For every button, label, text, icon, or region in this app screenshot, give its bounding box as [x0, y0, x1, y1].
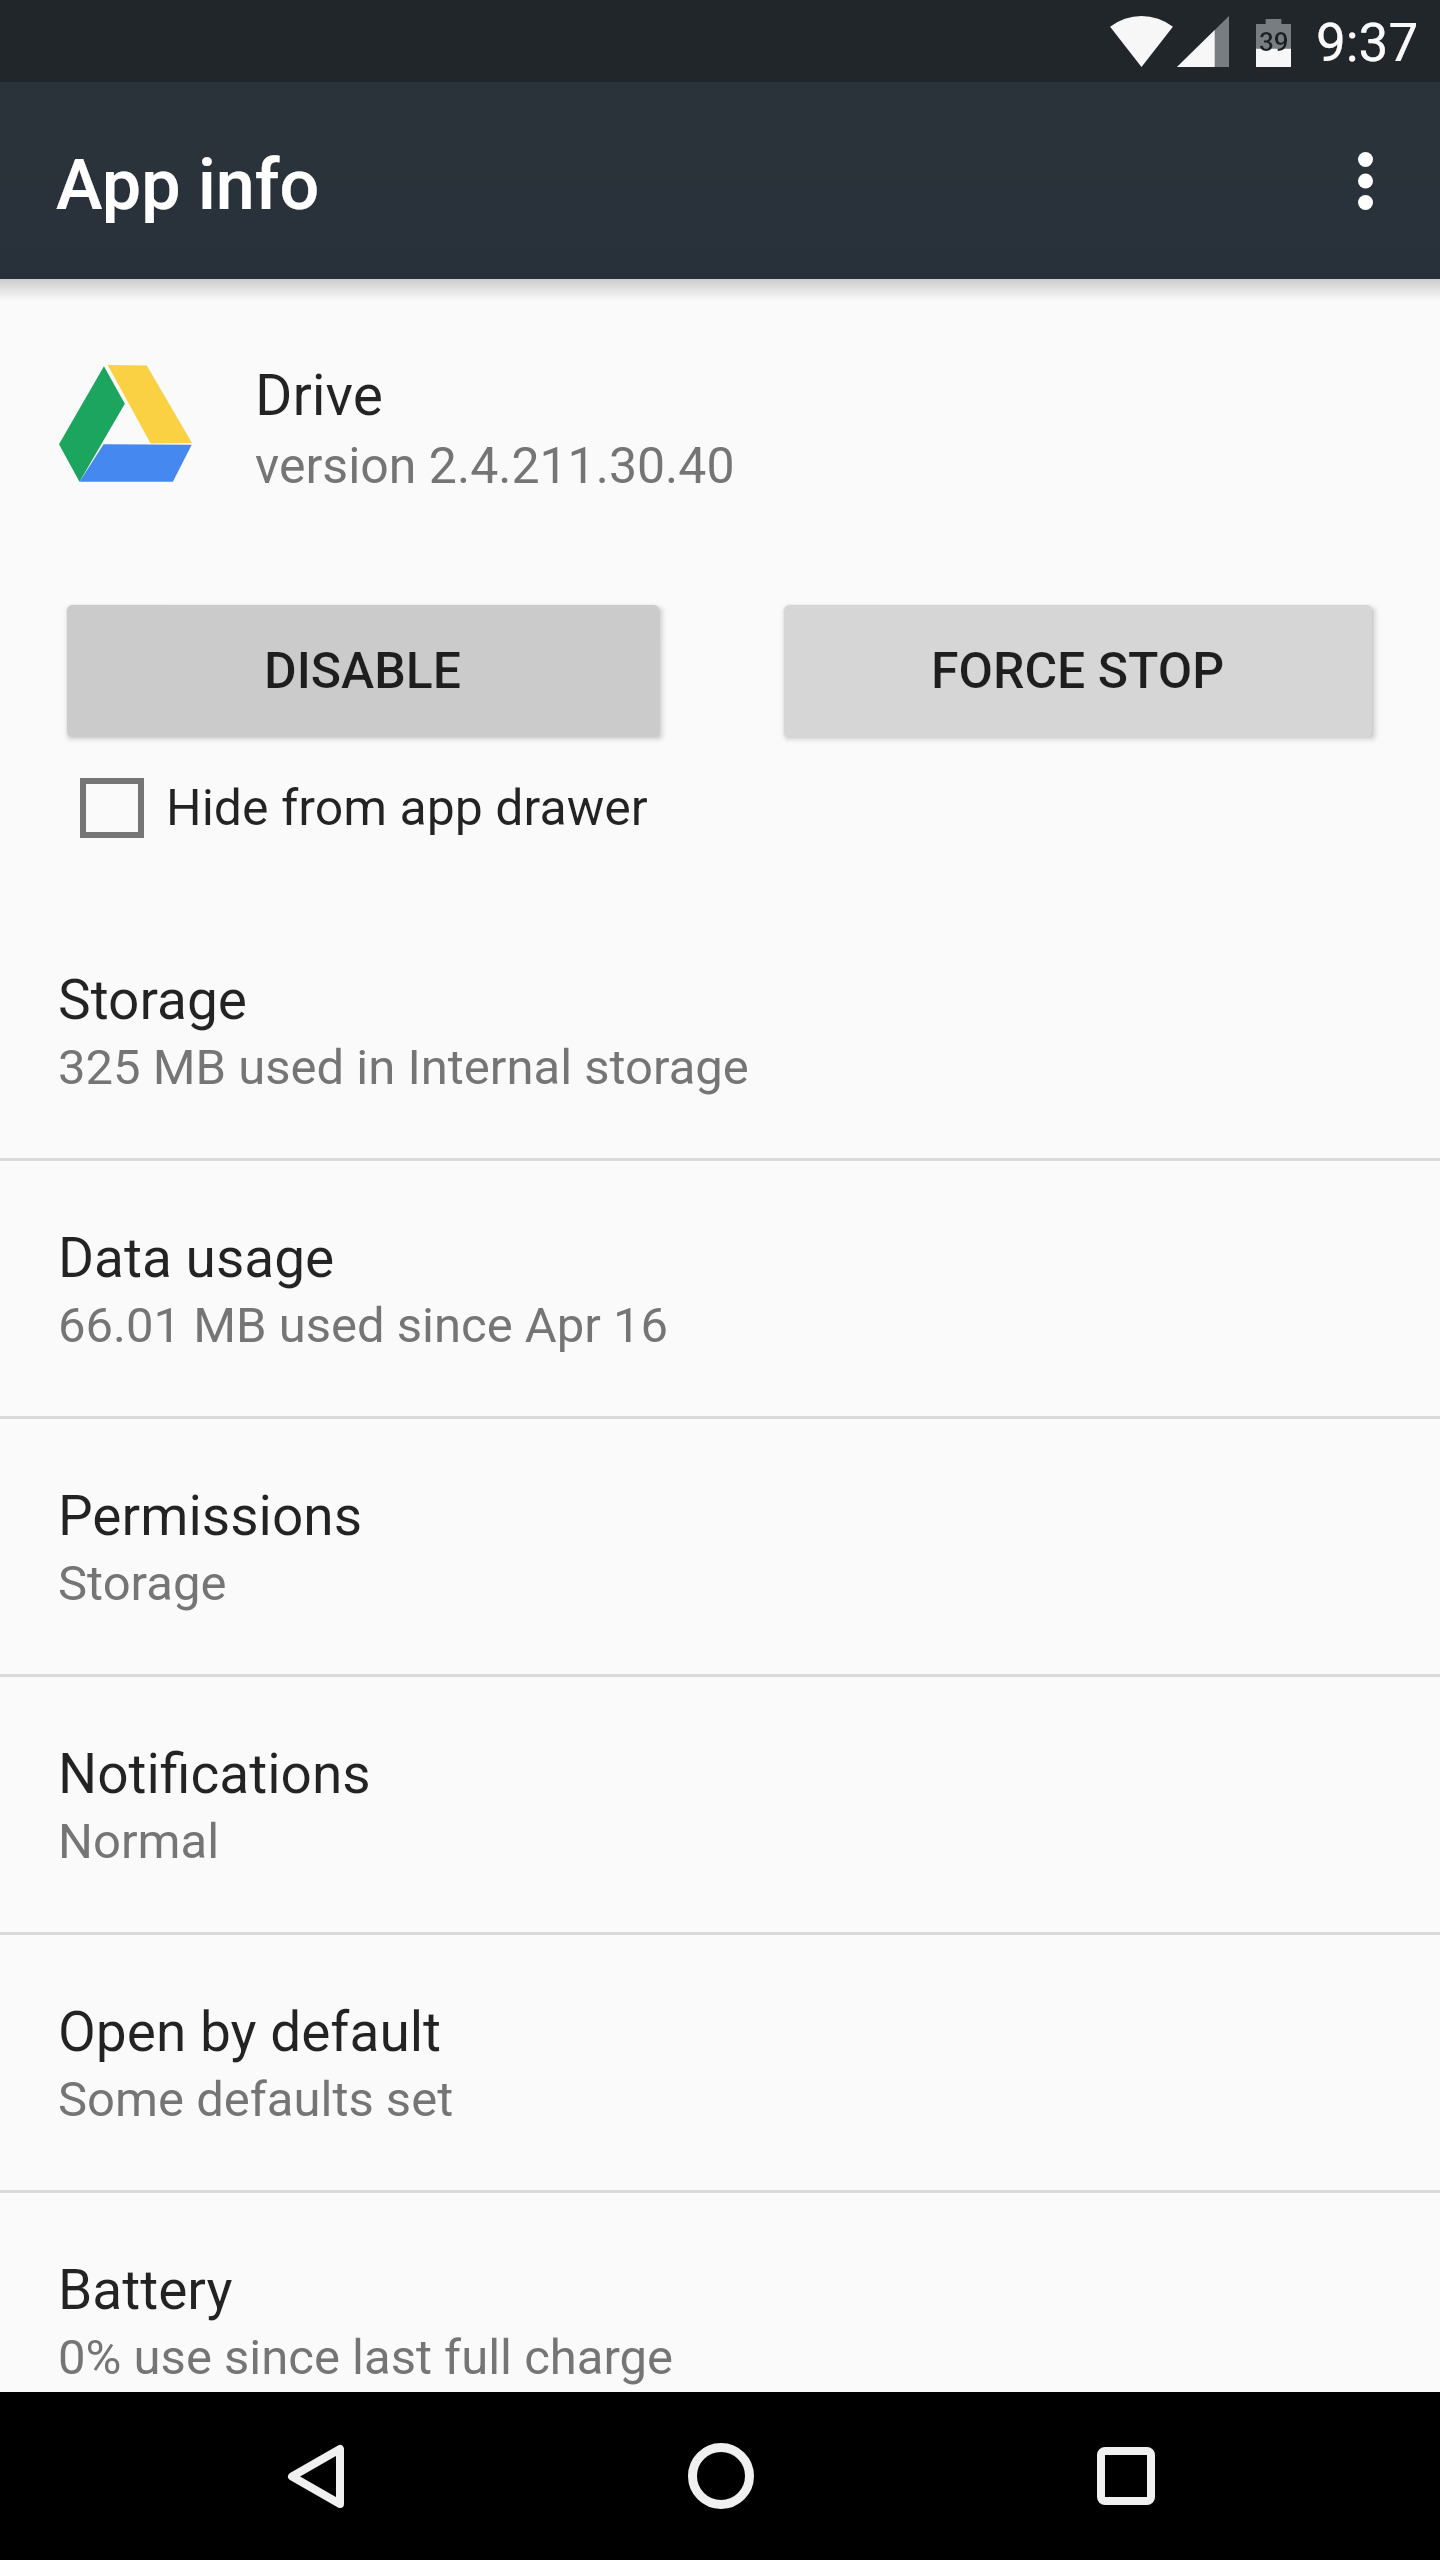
staticText: 39: [1259, 27, 1289, 57]
staticText: 9:37: [1316, 12, 1419, 74]
button[interactable]: DISABLE: [67, 605, 659, 737]
button[interactable]: FORCE STOP: [784, 605, 1372, 737]
staticText: Data usage: [58, 1226, 335, 1290]
staticText: Open by default: [58, 2000, 442, 2064]
button[interactable]: Open by default: [0, 1935, 1440, 2190]
staticText: Battery: [58, 2258, 233, 2322]
staticText: 0% use since last full charge: [58, 2329, 674, 2386]
button[interactable]: Recent apps: [1046, 2396, 1206, 2556]
button[interactable]: More options: [1290, 106, 1440, 256]
button[interactable]: Back: [236, 2396, 396, 2556]
staticText: Permissions: [58, 1484, 363, 1548]
button[interactable]: Storage: [0, 903, 1440, 1158]
staticText: 325 MB used in Internal storage: [58, 1039, 749, 1096]
button[interactable]: Data usage: [0, 1161, 1440, 1416]
button[interactable]: Battery: [0, 2193, 1440, 2448]
staticText: App info: [56, 144, 320, 226]
staticText: Storage: [58, 1555, 227, 1612]
staticText: Notifications: [58, 1742, 371, 1806]
button[interactable]: Hide from app drawer: [0, 770, 1440, 846]
staticText: Some defaults set: [58, 2071, 454, 2128]
staticText: Storage: [58, 968, 248, 1032]
staticText: FORCE STOP: [931, 642, 1225, 701]
staticText: Normal: [58, 1813, 220, 1870]
staticText: 66.01 MB used since Apr 16: [58, 1297, 669, 1354]
button[interactable]: Notifications: [0, 1677, 1440, 1932]
staticText: Drive: [255, 362, 384, 429]
staticText: Hide from app drawer: [166, 779, 648, 838]
button[interactable]: Permissions: [0, 1419, 1440, 1674]
staticText: DISABLE: [264, 642, 462, 701]
staticText: version 2.4.211.30.40: [255, 437, 735, 496]
button[interactable]: Home: [641, 2396, 801, 2556]
